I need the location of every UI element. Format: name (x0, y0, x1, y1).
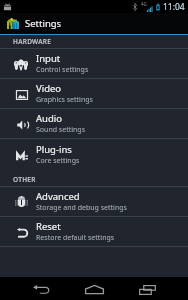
staticText: Reset (36, 220, 61, 233)
button[interactable]: Home (68, 277, 121, 300)
staticText: Input (36, 52, 61, 65)
staticText: Graphics settings (36, 95, 93, 105)
staticText: Control settings (36, 65, 89, 75)
button[interactable]: Input (0, 49, 188, 78)
button[interactable]: Reset (0, 217, 188, 246)
staticText: Plug-ins (36, 143, 72, 156)
staticText: Storage and debug settings (36, 203, 127, 213)
staticText: HARDWARE (13, 37, 52, 46)
button[interactable]: Settings (0, 13, 188, 34)
staticText: Restore default settings (36, 233, 115, 243)
button[interactable]: Advanced (0, 187, 188, 216)
staticText: 4G (141, 1, 147, 7)
button[interactable]: Plug-ins (0, 139, 188, 169)
button[interactable]: Audio (0, 109, 188, 138)
staticText: Audio (36, 112, 62, 125)
staticText: Video (36, 82, 62, 95)
staticText: OTHER (13, 175, 36, 184)
button[interactable]: Recent apps (121, 277, 174, 300)
button[interactable]: Back (15, 277, 68, 300)
staticText: Core settings (36, 156, 80, 166)
staticText: Sound settings (36, 125, 85, 135)
staticText: Settings (25, 17, 62, 30)
button[interactable]: Video (0, 79, 188, 108)
staticText: Advanced (36, 190, 80, 203)
staticText: 11:04 (163, 1, 185, 13)
